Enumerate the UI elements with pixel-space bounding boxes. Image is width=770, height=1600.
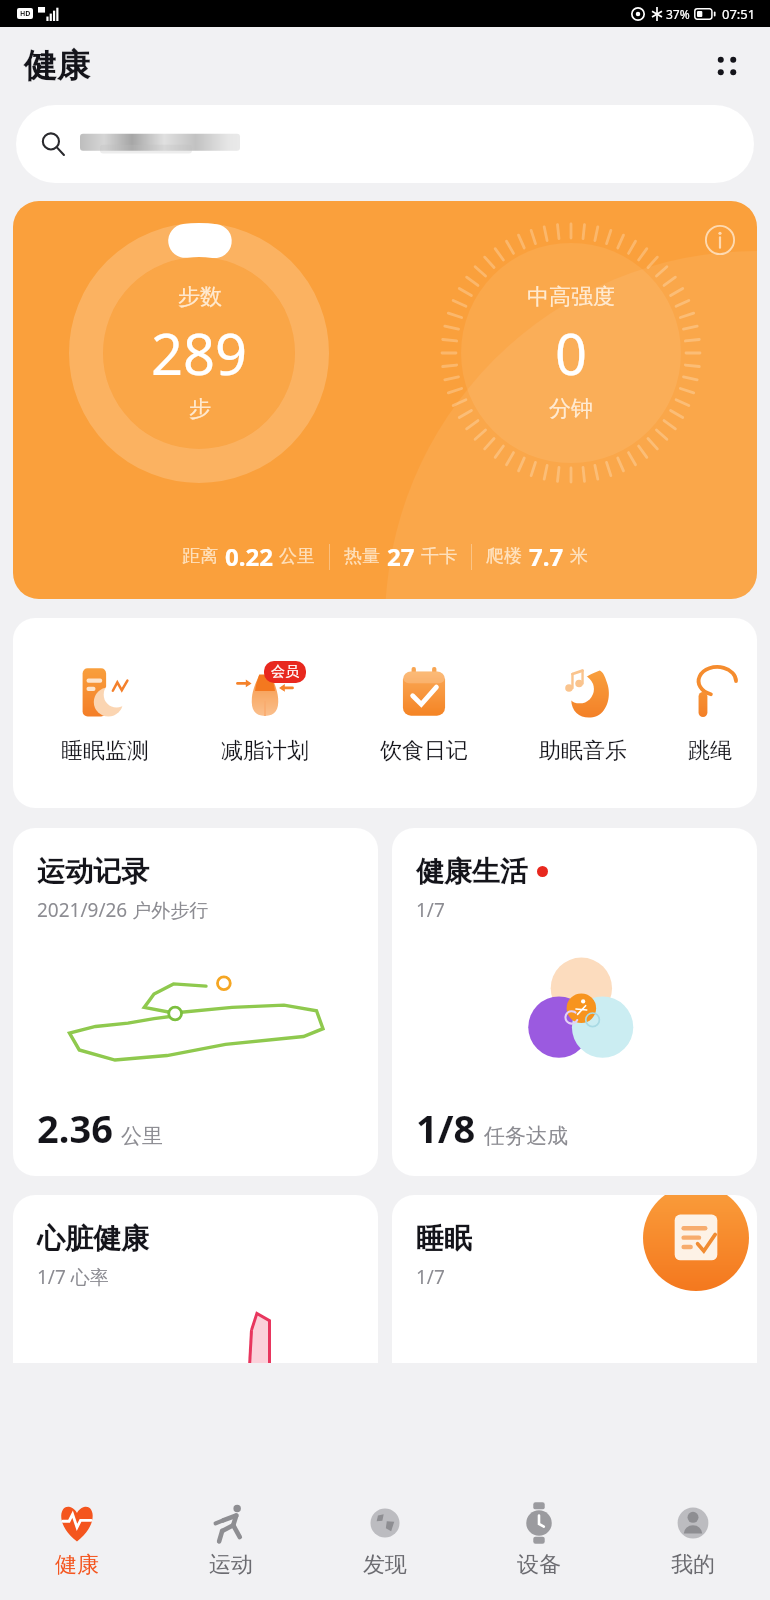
button[interactable]: 运动记录	[13, 828, 378, 1176]
staticText: 心脏健康	[37, 1221, 149, 1256]
staticText: 健康生活	[416, 854, 528, 889]
button[interactable]: 发现	[308, 1480, 462, 1600]
staticText: 发现	[363, 1551, 407, 1579]
staticText: 1/7	[416, 897, 445, 923]
staticText: 289	[151, 315, 248, 391]
staticText: 健康	[55, 1551, 99, 1579]
staticText: 热量	[344, 545, 380, 568]
staticText: 1/7 心率	[37, 1264, 109, 1290]
staticText: 减脂计划	[221, 737, 309, 765]
staticText: 07:51	[722, 5, 756, 23]
staticText: 助眠音乐	[539, 737, 627, 765]
staticText: 1/8	[416, 1102, 476, 1154]
button[interactable]: 睡眠	[392, 1195, 757, 1363]
staticText: 37%	[666, 6, 690, 22]
button[interactable]: Sleep diary	[643, 1195, 749, 1291]
staticText: 7.7	[529, 540, 564, 573]
button[interactable]: 跳绳	[662, 618, 757, 808]
staticText: 运动	[209, 1551, 253, 1579]
staticText: 睡眠	[416, 1221, 472, 1256]
button[interactable]	[16, 105, 754, 183]
button[interactable]: 运动	[154, 1480, 308, 1600]
staticText: 中高强度	[527, 283, 615, 311]
button[interactable]: 心脏健康	[13, 1195, 378, 1363]
staticText: 我的	[671, 1551, 715, 1579]
button[interactable]: 助眠音乐	[503, 618, 662, 808]
staticText: 会员	[271, 663, 299, 681]
staticText: 健康	[24, 45, 90, 87]
staticText: 千卡	[421, 545, 457, 568]
button[interactable]: 饮食日记	[344, 618, 503, 808]
button[interactable]: 设备	[462, 1480, 616, 1600]
staticText: 任务达成	[484, 1123, 568, 1149]
staticText: 设备	[517, 1551, 561, 1579]
staticText: 分钟	[549, 395, 593, 423]
button[interactable]: Information	[13, 201, 757, 599]
button[interactable]: 会员	[185, 618, 344, 808]
staticText: 2021/9/26 户外步行	[37, 897, 209, 923]
staticText: 距离	[182, 545, 218, 568]
staticText: 1/7	[416, 1264, 445, 1290]
button[interactable]: 我的	[616, 1480, 770, 1600]
button[interactable]: 健康	[0, 1480, 154, 1600]
staticText: 2.36	[37, 1102, 113, 1154]
staticText: 饮食日记	[380, 737, 468, 765]
staticText: 公里	[121, 1123, 163, 1149]
staticText: 米	[570, 545, 588, 568]
staticText: 爬楼	[486, 545, 522, 568]
button[interactable]: More options	[703, 42, 751, 90]
button[interactable]: Information	[697, 217, 743, 263]
staticText: 0	[555, 315, 588, 391]
staticText: 跳绳	[688, 737, 732, 765]
button[interactable]: 健康生活	[392, 828, 757, 1176]
staticText: 步数	[178, 283, 222, 311]
staticText: 睡眠监测	[61, 737, 149, 765]
staticText: 公里	[279, 545, 315, 568]
staticText: HD	[20, 9, 31, 19]
staticText: 27	[387, 540, 415, 573]
staticText: 运动记录	[37, 854, 149, 889]
staticText: 0.22	[225, 540, 273, 573]
staticText: 步	[189, 395, 211, 423]
button[interactable]: 睡眠监测	[25, 618, 185, 808]
